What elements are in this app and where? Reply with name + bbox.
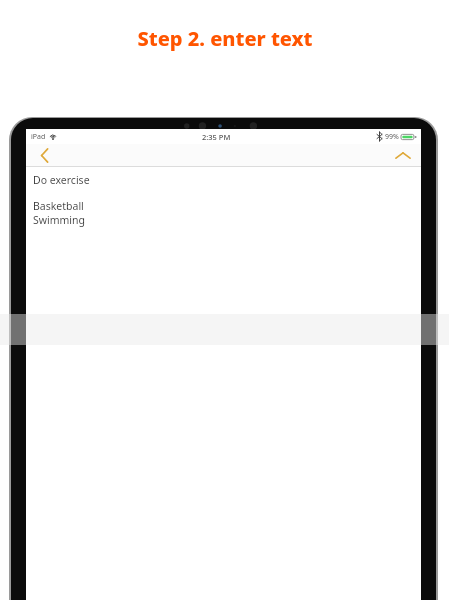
staticText: iPad — [31, 132, 46, 142]
staticText: 99% — [385, 132, 399, 142]
staticText: Basketball — [33, 199, 84, 213]
button[interactable]: Collapse — [390, 144, 416, 167]
button[interactable]: Back — [32, 144, 56, 167]
staticText: Step 2. enter text — [137, 25, 313, 52]
staticText: Do exercise — [33, 173, 90, 187]
staticText: 2:35 PM — [202, 132, 231, 142]
button[interactable]: Do exercise — [26, 167, 421, 600]
staticText: Swimming — [33, 213, 86, 227]
